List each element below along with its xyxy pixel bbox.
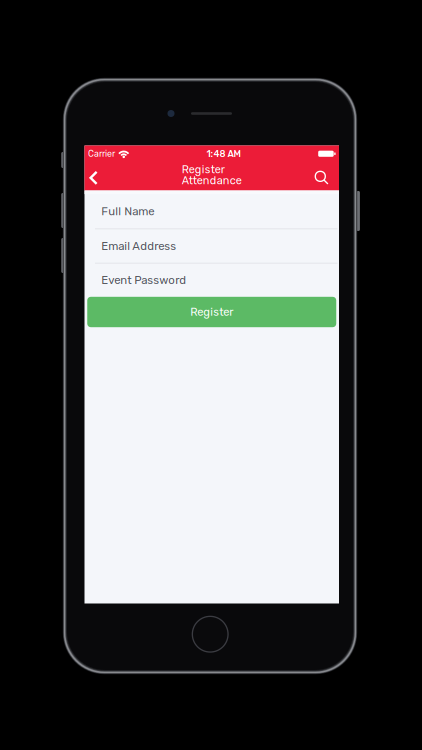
staticText: Full Name <box>101 204 154 218</box>
staticText: Register <box>182 163 225 176</box>
button[interactable]: Back <box>84 164 118 192</box>
button[interactable]: Full Name <box>84 194 339 228</box>
button[interactable]: Event Password <box>84 264 339 297</box>
staticText: Register <box>190 305 233 319</box>
button[interactable]: Search <box>305 164 339 192</box>
staticText: Event Password <box>101 273 186 287</box>
staticText: Attendance <box>182 174 242 187</box>
staticText: 1:48 AM <box>207 148 241 159</box>
button[interactable]: Email Address <box>84 229 339 263</box>
staticText: Carrier <box>88 148 115 159</box>
button[interactable]: Register <box>87 297 336 327</box>
staticText: Email Address <box>101 239 176 253</box>
